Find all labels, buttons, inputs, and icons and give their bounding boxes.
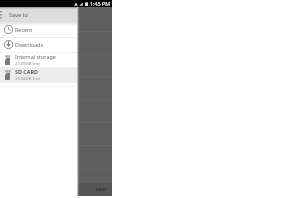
staticText: 23.09GB free	[15, 61, 41, 67]
staticText: Downloads	[15, 41, 44, 48]
staticText: Internal storage	[15, 53, 56, 60]
button[interactable]: Internal storage	[0, 52, 77, 67]
button[interactable]: Open navigation drawer	[0, 7, 77, 22]
button[interactable]: Downloads	[0, 37, 77, 52]
button[interactable]: SAVE	[77, 183, 112, 196]
staticText: 29.04GB free	[15, 76, 41, 82]
button[interactable]: Recent	[0, 22, 77, 37]
staticText: 1:45 PM	[90, 0, 111, 7]
button[interactable]: SD CARD	[0, 67, 77, 83]
staticText: Save to	[9, 11, 28, 18]
staticText: SD CARD	[15, 68, 38, 75]
staticText: Recent	[15, 26, 33, 33]
staticText: SAVE	[96, 187, 107, 193]
